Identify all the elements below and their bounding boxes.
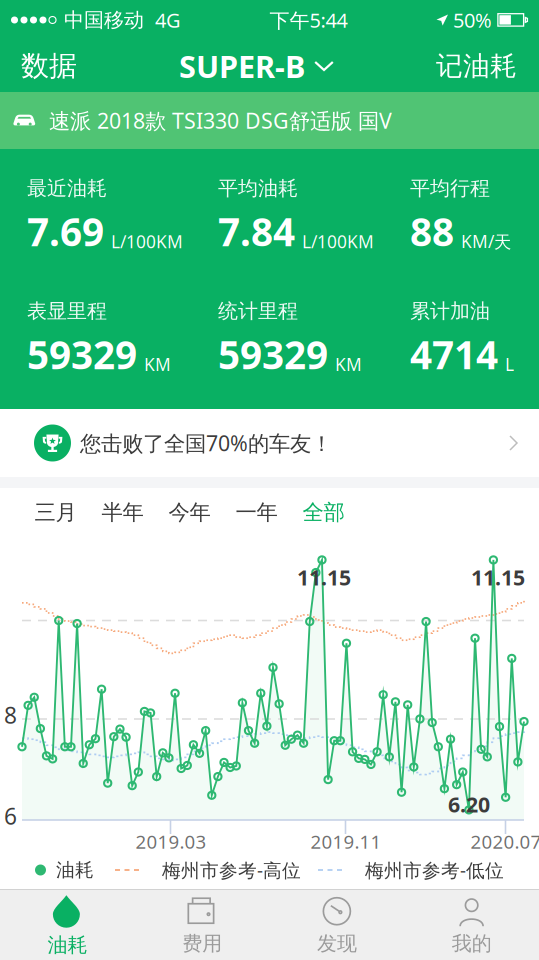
staticText: 11.15: [297, 563, 351, 591]
staticText: 记油耗: [436, 50, 517, 82]
staticText: 半年: [101, 499, 143, 526]
staticText: 表显里程: [27, 299, 107, 323]
staticText: 累计加油: [410, 299, 490, 323]
staticText: 梅州市参考-高位: [162, 858, 301, 882]
button[interactable]: 费用: [135, 890, 270, 960]
button[interactable]: 您击败了全国70%的车友！: [0, 409, 539, 477]
staticText: 数据: [21, 49, 77, 83]
button[interactable]: 一年: [223, 488, 290, 537]
button[interactable]: 今年: [156, 488, 223, 537]
staticText: 59329: [218, 328, 328, 380]
staticText: KM: [335, 353, 362, 376]
staticText: 6: [4, 801, 17, 831]
staticText: 费用: [182, 931, 222, 956]
button[interactable]: 我的: [404, 890, 539, 960]
button[interactable]: 油耗: [0, 890, 135, 960]
staticText: 平均行程: [410, 176, 490, 201]
staticText: 11.15: [471, 563, 525, 591]
staticText: 今年: [168, 499, 210, 526]
staticText: L/100KM: [302, 230, 374, 253]
staticText: 2019.11: [310, 829, 381, 854]
staticText: 梅州市参考-低位: [365, 858, 504, 882]
staticText: 6.20: [448, 790, 490, 818]
staticText: 下午5:44: [269, 7, 347, 33]
staticText: 油耗: [47, 933, 87, 957]
staticText: 三月: [34, 499, 76, 526]
staticText: 50%: [453, 7, 492, 33]
button[interactable]: 半年: [89, 488, 156, 537]
staticText: 88: [410, 206, 454, 257]
staticText: 全部: [302, 499, 344, 526]
staticText: 您击败了全国70%的车友！: [80, 429, 332, 457]
staticText: 8: [4, 700, 17, 730]
button[interactable]: SUPER-B: [179, 40, 334, 92]
staticText: 速派 2018款 TSI330 DSG舒适版 国V: [49, 106, 392, 135]
staticText: L: [505, 353, 514, 376]
staticText: 我的: [452, 931, 492, 956]
staticText: L/100KM: [111, 230, 183, 253]
staticText: 2020.07: [470, 829, 539, 854]
staticText: 7.84: [218, 206, 295, 257]
staticText: 7.69: [27, 206, 104, 257]
staticText: SUPER-B: [179, 46, 305, 86]
staticText: 中国移动: [64, 8, 144, 32]
staticText: 油耗: [56, 858, 94, 881]
staticText: KM: [144, 353, 171, 376]
staticText: KM/天: [461, 230, 511, 253]
staticText: 4714: [410, 328, 498, 380]
button[interactable]: 数据: [0, 40, 93, 92]
button[interactable]: 三月: [22, 488, 89, 537]
staticText: 平均油耗: [218, 176, 298, 201]
button[interactable]: 发现: [269, 890, 404, 960]
staticText: 2019.03: [135, 829, 206, 854]
staticText: 发现: [317, 931, 357, 956]
staticText: 统计里程: [218, 299, 298, 323]
staticText: 59329: [27, 328, 137, 380]
button[interactable]: 记油耗: [420, 40, 539, 92]
staticText: 最近油耗: [27, 176, 107, 201]
staticText: 一年: [235, 499, 277, 526]
staticText: 4G: [155, 7, 181, 33]
button[interactable]: 全部: [290, 488, 357, 537]
